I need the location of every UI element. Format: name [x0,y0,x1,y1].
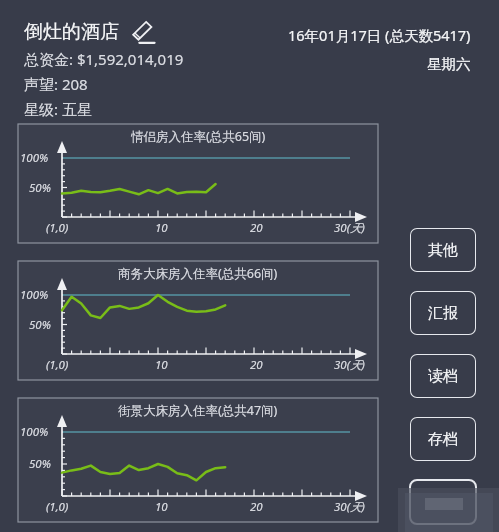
staticText: 16年01月17日 (总天数5417) [288,25,471,45]
staticText: 汇报 [428,304,458,323]
staticText: 总资金: $1,592,014,019 [24,49,184,69]
staticText: 20 [250,357,263,373]
staticText: 读档 [428,367,458,386]
button[interactable]: 存档 [410,417,476,461]
staticText: 星期六 [427,55,471,73]
staticText: 10 [155,499,168,515]
staticText: 30(天) [334,220,365,236]
staticText: 存档 [428,430,458,449]
button[interactable]: 商务大床房入住率(总共66间) [18,261,378,380]
staticText: 其他 [428,241,458,260]
staticText: 50% [29,317,51,333]
staticText: 20 [250,220,263,236]
staticText: 30(天) [334,357,365,373]
button[interactable]: 其他 [410,228,476,272]
button[interactable]: 汇报 [410,291,476,335]
button[interactable]: 读档 [410,354,476,398]
staticText: 情侣房入住率(总共65间) [131,128,266,145]
button[interactable]: More options [410,480,476,524]
staticText: 50% [29,456,51,472]
staticText: (1,0) [46,357,69,373]
staticText: 30(天) [334,499,365,515]
button[interactable]: 街景大床房入住率(总共47间) [18,398,378,522]
button[interactable]: Rename hotel [128,17,158,47]
staticText: 100% [20,150,49,166]
staticText: (1,0) [46,499,69,515]
staticText: 100% [20,424,49,440]
staticText: (1,0) [46,220,69,236]
staticText: 10 [155,357,168,373]
staticText: 50% [29,180,51,196]
button[interactable]: 情侣房入住率(总共65间) [18,124,378,243]
staticText: 商务大床房入住率(总共66间) [118,265,278,282]
staticText: 20 [250,499,263,515]
staticText: 倒灶的酒店 [24,20,119,44]
staticText: 街景大床房入住率(总共47间) [118,402,278,419]
staticText: 10 [155,220,168,236]
staticText: 100% [20,287,49,303]
staticText: 声望: 208 [24,74,88,94]
staticText: 星级: 五星 [24,99,92,119]
